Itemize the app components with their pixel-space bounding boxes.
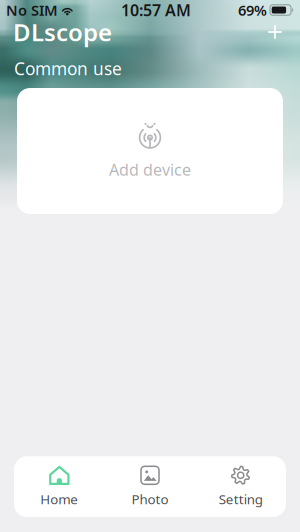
staticText: 10:57 AM: [121, 0, 191, 21]
staticText: Home: [40, 490, 78, 508]
button[interactable]: Photo: [105, 456, 195, 517]
button[interactable]: Add device: [17, 88, 283, 214]
staticText: No SIM: [6, 0, 58, 20]
staticText: DLscope: [13, 16, 112, 48]
staticText: Common use: [14, 57, 122, 80]
staticText: Photo: [131, 490, 168, 508]
staticText: Setting: [219, 490, 263, 508]
staticText: 69%: [238, 0, 267, 20]
staticText: Add device: [109, 159, 191, 180]
button[interactable]: Setting: [195, 456, 286, 517]
button[interactable]: Add device: [262, 19, 288, 45]
button[interactable]: Home: [14, 456, 105, 517]
